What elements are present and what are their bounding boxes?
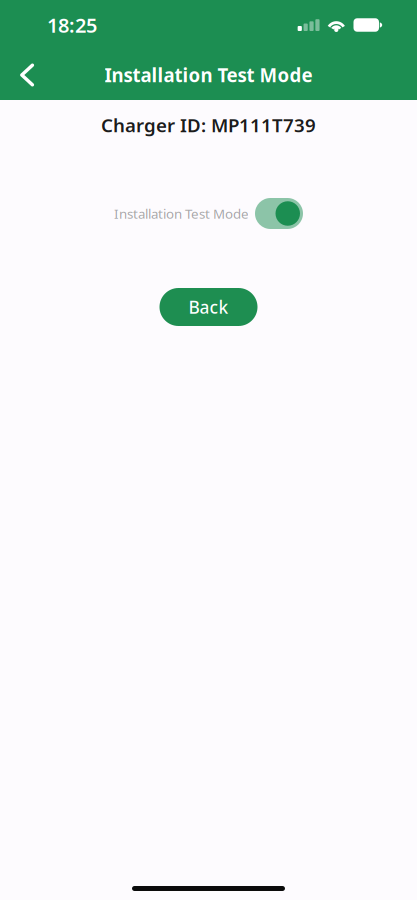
staticText: Installation Test Mode <box>114 205 249 222</box>
button[interactable]: Installation Test Mode toggle <box>255 198 303 229</box>
button[interactable]: Back <box>159 288 257 326</box>
staticText: 18:25 <box>47 12 97 38</box>
staticText: Charger ID: MP111T739 <box>101 113 316 137</box>
staticText: Back <box>188 295 228 318</box>
button[interactable]: Back <box>7 53 47 97</box>
staticText: Installation Test Mode <box>104 63 312 87</box>
